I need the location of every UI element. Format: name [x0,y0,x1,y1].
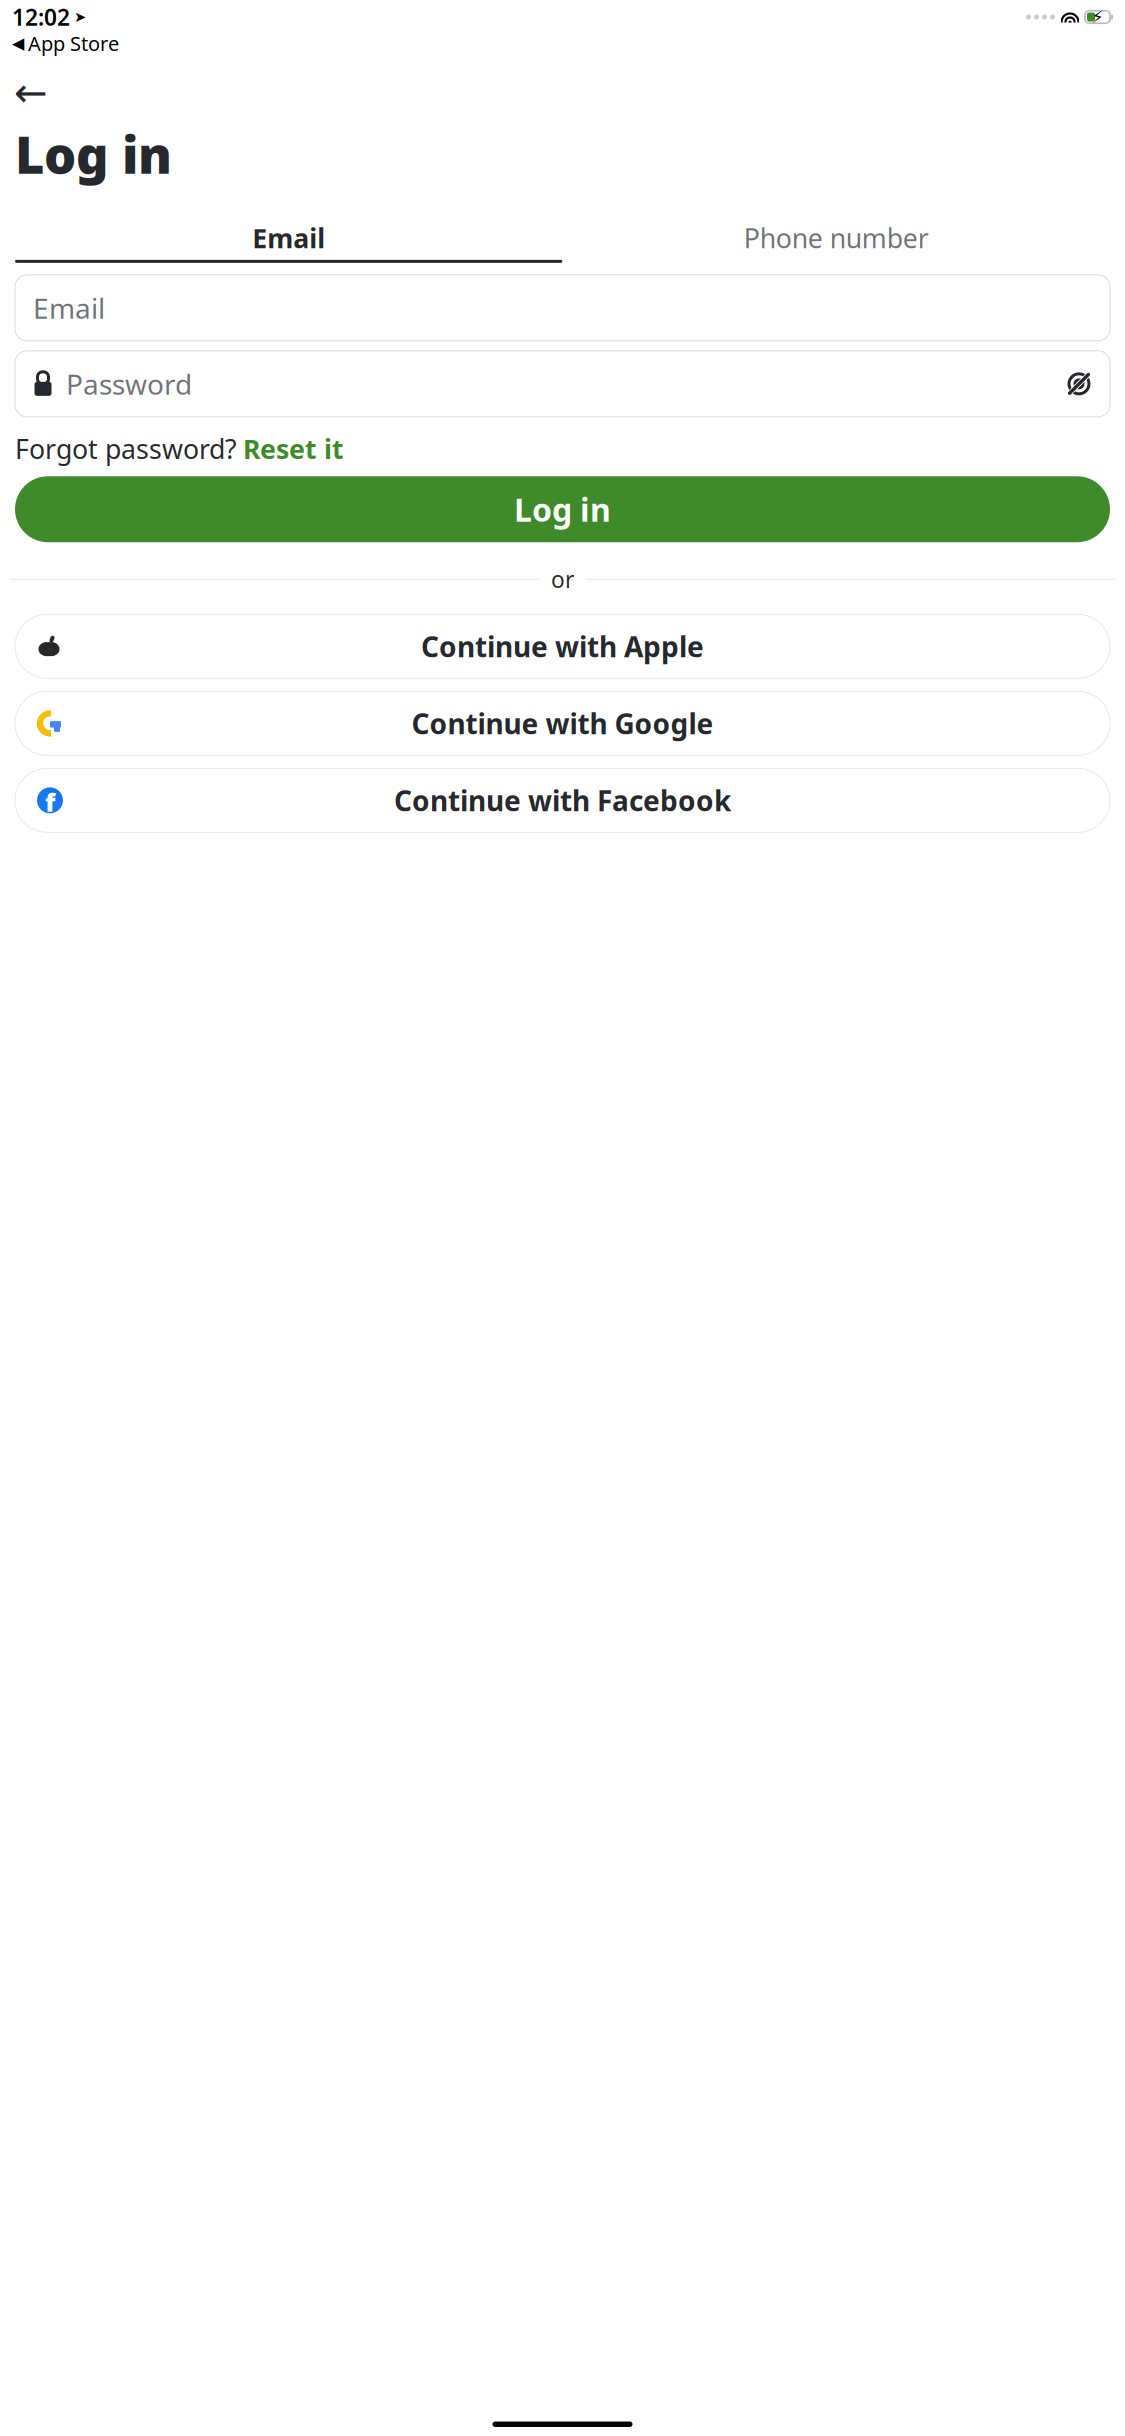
button[interactable]: Password [15,351,1110,417]
staticText: Continue with Google [411,705,713,742]
button[interactable]: Log in [15,476,1110,542]
button[interactable]: Continue with Google [15,691,1110,755]
button[interactable]: Reset it [243,431,344,466]
button[interactable]: Phone number [562,216,1110,260]
staticText: ◀ [12,34,24,52]
staticText: Phone number [744,220,929,255]
button[interactable]: f [15,768,1110,832]
staticText: Email [33,289,105,326]
staticText: ➤ [74,9,86,25]
staticText: Continue with Apple [421,628,704,665]
staticText: ← [14,70,48,115]
staticText: or [551,564,574,594]
staticText: Forgot password? [15,431,237,466]
staticText: Log in [15,121,172,188]
staticText: Email [252,220,325,255]
button[interactable]: Back [14,71,58,115]
staticText: ⚡︎ [1091,7,1103,27]
staticText: 12:02 [12,2,70,32]
button[interactable]: Continue with Apple [15,614,1110,678]
staticText: Reset it [243,431,344,466]
staticText: App Store [28,30,119,57]
button[interactable]: Email [15,216,562,260]
staticText: f [45,785,55,819]
staticText: Password [66,365,192,402]
staticText: Log in [514,488,611,530]
button[interactable]: Email [15,275,1110,341]
staticText: Continue with Facebook [394,782,731,819]
